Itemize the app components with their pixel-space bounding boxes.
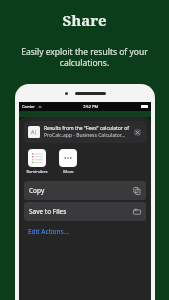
staticText: Carrier <box>22 104 36 109</box>
staticText: Results from the "Fees" calculator of <box>44 125 129 132</box>
staticText: More <box>63 169 74 175</box>
button[interactable]: Copy <box>24 181 146 200</box>
staticText: ProCalc.app - Business Calculator... <box>44 132 126 139</box>
staticText: Share <box>62 10 107 30</box>
staticText: Copy <box>29 186 133 195</box>
staticText: Edit Actions... <box>28 227 69 236</box>
button[interactable]: Close <box>133 128 142 137</box>
staticText: Reminders <box>26 169 48 175</box>
staticText: Easily exploit the results of your calcu… <box>18 46 151 68</box>
button[interactable]: Save to Files <box>24 202 146 221</box>
button[interactable]: Reminders <box>26 149 48 175</box>
button[interactable]: A| <box>24 121 146 143</box>
button[interactable]: More <box>57 149 79 175</box>
staticText: 7:52 PM <box>83 104 99 109</box>
button[interactable]: Edit Actions... <box>24 226 69 239</box>
staticText: A| <box>31 129 37 136</box>
staticText: Save to Files <box>29 207 133 216</box>
